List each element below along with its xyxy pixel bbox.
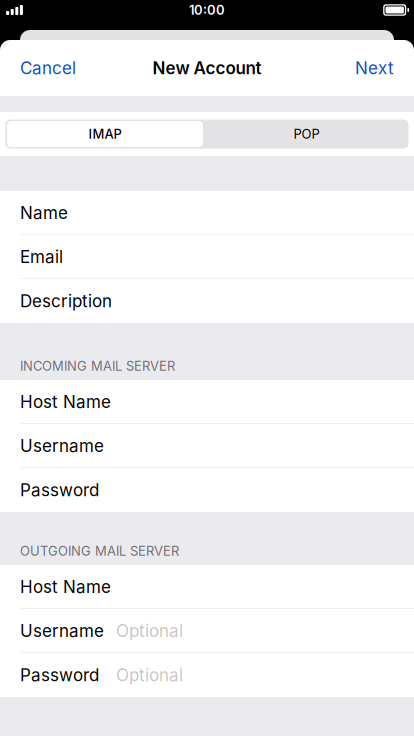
staticText: Optional — [116, 620, 183, 641]
staticText: Password — [20, 480, 99, 500]
staticText: Username — [20, 435, 104, 456]
button[interactable]: Host Name — [0, 380, 414, 424]
staticText: Name — [20, 202, 68, 223]
button[interactable]: Password — [0, 468, 414, 512]
staticText: OUTGOING MAIL SERVER — [20, 543, 179, 559]
button[interactable]: Host Name — [0, 565, 414, 609]
staticText: IMAP — [88, 126, 121, 142]
button[interactable]: POP — [204, 119, 408, 148]
button[interactable]: Email — [0, 235, 414, 279]
button[interactable]: Name — [0, 191, 414, 235]
button[interactable]: Username — [0, 424, 414, 468]
staticText: Host Name — [20, 576, 111, 597]
staticText: INCOMING MAIL SERVER — [20, 358, 175, 374]
staticText: POP — [293, 126, 319, 142]
staticText: Next — [355, 58, 394, 78]
staticText: Description — [20, 291, 112, 311]
staticText: 10:00 — [189, 2, 225, 18]
button[interactable]: Next — [343, 40, 414, 96]
staticText: New Account — [152, 58, 261, 78]
staticText: Password — [20, 665, 99, 685]
staticText: Optional — [116, 665, 183, 685]
button[interactable]: Cancel — [0, 40, 88, 96]
staticText: Cancel — [20, 58, 76, 78]
button[interactable]: Description — [0, 279, 414, 323]
button[interactable]: Password — [0, 653, 414, 697]
button[interactable]: IMAP — [5, 119, 204, 148]
button[interactable]: Username — [0, 609, 414, 653]
staticText: Host Name — [20, 391, 111, 412]
staticText: Username — [20, 620, 104, 641]
staticText: Email — [20, 246, 63, 267]
